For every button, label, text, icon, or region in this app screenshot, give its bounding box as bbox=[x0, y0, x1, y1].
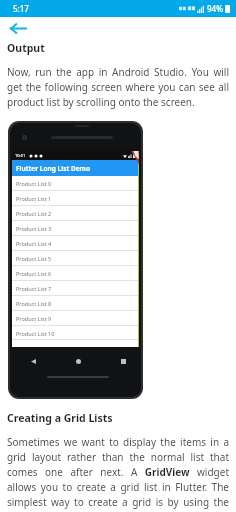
button[interactable]: Recents bbox=[116, 354, 130, 368]
button[interactable]: Product List 6 bbox=[12, 266, 139, 281]
button[interactable]: Product List 3 bbox=[12, 221, 139, 236]
button[interactable]: Product List 0 bbox=[12, 176, 139, 191]
staticText: Output bbox=[7, 41, 45, 55]
staticText: Product List 5 bbox=[16, 255, 52, 262]
staticText: 94% bbox=[207, 3, 223, 14]
staticText: Product List 10 bbox=[16, 330, 55, 337]
staticText: Creating a Grid Lists bbox=[7, 411, 113, 425]
staticText: Flutter Long List Demo bbox=[16, 164, 90, 173]
button[interactable]: Back bbox=[6, 17, 28, 39]
staticText: Product List 2 bbox=[16, 210, 52, 217]
staticText: 5:17 bbox=[13, 3, 29, 14]
staticText: Product List 9 bbox=[16, 315, 52, 322]
button[interactable]: Product List 9 bbox=[12, 311, 139, 326]
staticText: Now, run the app in Android Studio. You … bbox=[7, 65, 229, 109]
button[interactable]: Product List 1 bbox=[12, 191, 139, 206]
button[interactable]: Product List 10 bbox=[12, 326, 139, 340]
staticText: Product List 1 bbox=[16, 195, 52, 202]
staticText: 10:51 bbox=[15, 153, 26, 158]
staticText: Product List 6 bbox=[16, 270, 52, 277]
staticText: Product List 3 bbox=[16, 225, 52, 232]
staticText: Sometimes we want to display the items i… bbox=[7, 435, 229, 512]
button[interactable]: Product List 2 bbox=[12, 206, 139, 221]
staticText: Product List 0 bbox=[16, 180, 52, 187]
staticText: Product List 4 bbox=[16, 240, 52, 247]
button[interactable]: Product List 5 bbox=[12, 251, 139, 266]
button[interactable]: Product List 4 bbox=[12, 236, 139, 251]
button[interactable]: Home bbox=[71, 354, 85, 368]
button[interactable]: Product List 8 bbox=[12, 296, 139, 311]
staticText: Product List 8 bbox=[16, 300, 52, 307]
button[interactable]: Product List 7 bbox=[12, 281, 139, 296]
staticText: Product List 7 bbox=[16, 285, 52, 292]
button[interactable]: Back bbox=[26, 354, 40, 368]
